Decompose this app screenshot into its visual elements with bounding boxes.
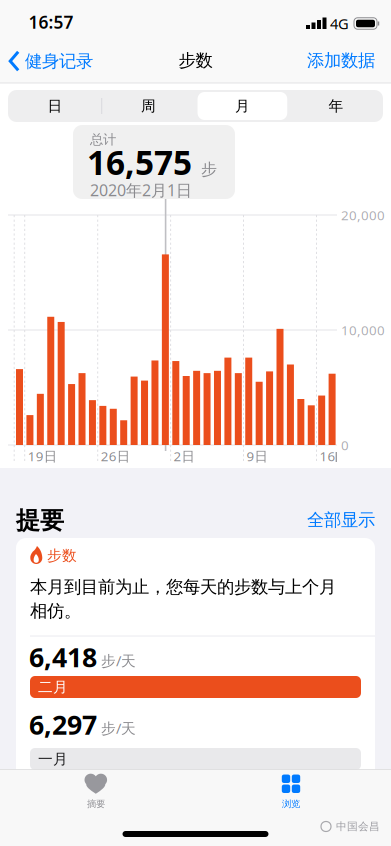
staticText: 健身记录	[25, 51, 93, 72]
button[interactable]: 摘要	[36, 768, 156, 814]
button[interactable]: 健身记录	[9, 51, 93, 72]
staticText: 摘要	[87, 798, 105, 810]
staticText: 月	[235, 97, 250, 115]
staticText: 16:57	[28, 10, 73, 33]
staticText: 6,418	[29, 639, 97, 675]
staticText: 26日	[101, 447, 130, 465]
button[interactable]: 浏览	[231, 768, 351, 814]
staticText: 步数	[47, 546, 77, 564]
staticText: 2020年2月1日	[90, 179, 192, 201]
button[interactable]: 步数	[16, 538, 375, 790]
button[interactable]: 日	[10, 90, 100, 122]
staticText: 年	[329, 97, 344, 115]
staticText: 2日	[174, 447, 195, 465]
staticText: 0	[341, 436, 349, 454]
button[interactable]: 月	[197, 90, 287, 122]
staticText: 16,575	[87, 140, 192, 184]
button[interactable]: 年	[291, 90, 381, 122]
button[interactable]: 全部显示	[275, 509, 375, 531]
staticText: 二月	[38, 678, 68, 696]
staticText: 中国会昌	[336, 820, 380, 833]
staticText: 20,000	[341, 206, 385, 224]
staticText: 4G	[330, 14, 349, 33]
staticText: 6,297	[29, 707, 97, 742]
staticText: 步数	[178, 50, 212, 71]
staticText: 浏览	[282, 798, 300, 810]
staticText: 总计	[90, 131, 116, 148]
staticText: 步	[201, 160, 217, 179]
staticText: 10,000	[341, 321, 385, 339]
staticText: 一月	[38, 750, 68, 768]
staticText: 步/天	[101, 651, 136, 670]
staticText: 步/天	[101, 718, 136, 738]
staticText: 添加数据	[307, 50, 375, 71]
staticText: 9日	[246, 447, 267, 465]
staticText: 16	[319, 447, 335, 465]
staticText: 相仿。	[30, 600, 81, 622]
staticText: 日	[47, 97, 62, 115]
staticText: 本月到目前为止，您每天的步数与上个月	[30, 576, 336, 598]
staticText: 19日	[28, 447, 57, 465]
staticText: 提要	[16, 506, 64, 535]
button[interactable]: 添加数据	[275, 50, 375, 71]
staticText: 全部显示	[307, 509, 375, 531]
button[interactable]: 周	[104, 90, 194, 122]
staticText: 周	[141, 97, 156, 115]
